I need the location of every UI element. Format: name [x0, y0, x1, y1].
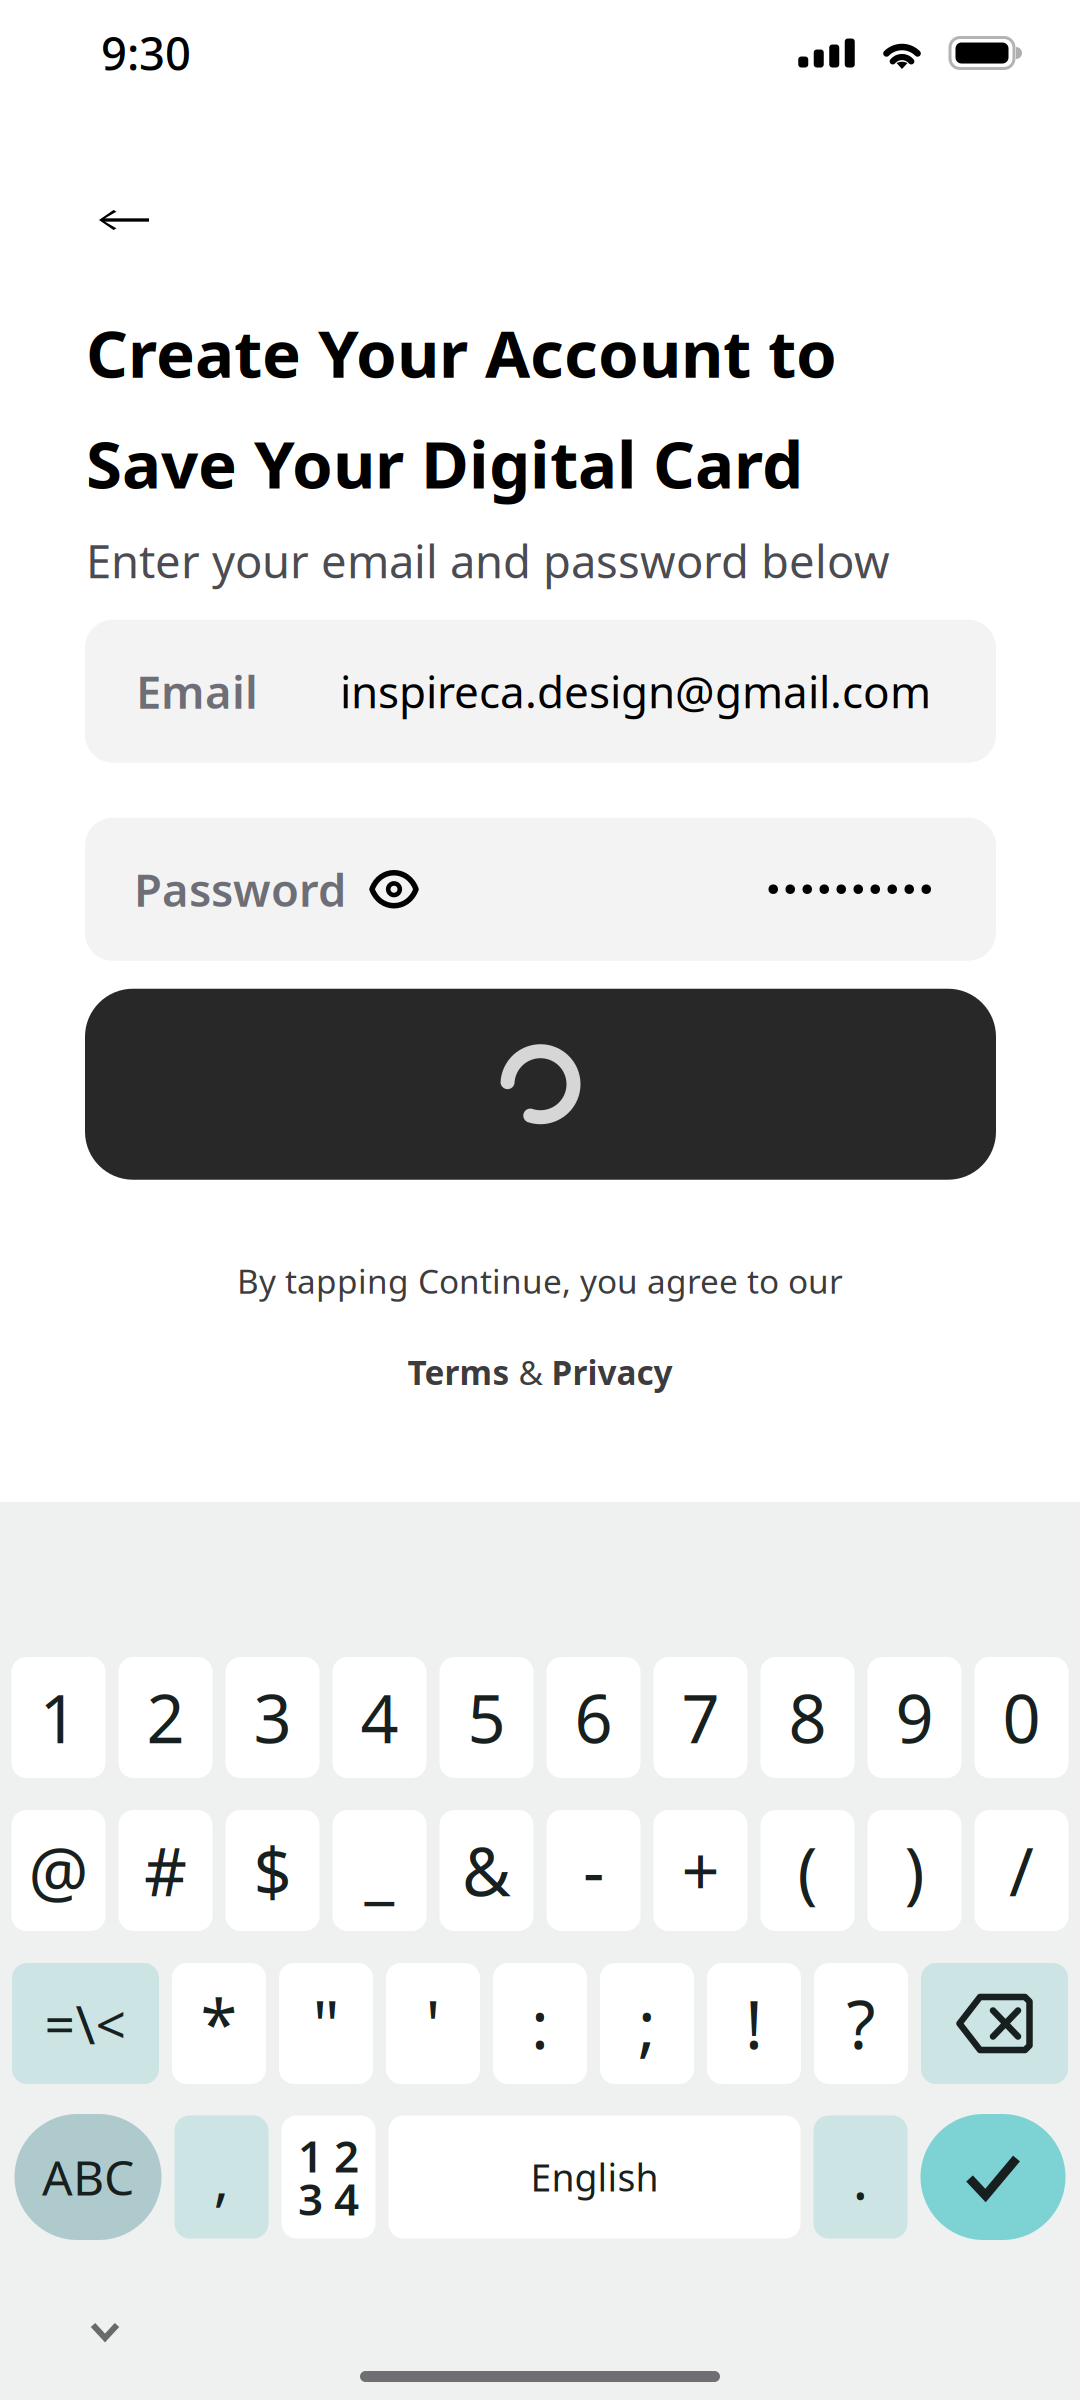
staticText: ABC [42, 2145, 134, 2209]
button[interactable]: English [388, 2115, 800, 2238]
button[interactable]: Terms [407, 1350, 509, 1394]
staticText: - [583, 1826, 604, 1915]
staticText: 0 [1002, 1673, 1040, 1762]
button[interactable]: ; [600, 1963, 694, 2084]
button[interactable]: " [279, 1963, 373, 2084]
button[interactable]: ! [707, 1963, 801, 2084]
staticText: : [531, 1979, 549, 2068]
button[interactable]: 2 [118, 1657, 212, 1778]
staticText: 8 [788, 1673, 826, 1762]
button[interactable]: + [653, 1810, 747, 1931]
button[interactable]: Privacy [551, 1350, 672, 1394]
button[interactable]: - [546, 1810, 640, 1931]
button[interactable]: 5 [439, 1657, 533, 1778]
button[interactable]: 0 [974, 1657, 1068, 1778]
staticText: 2 [146, 1673, 184, 1762]
button[interactable]: * [172, 1963, 266, 2084]
button[interactable]: =\< [12, 1963, 159, 2084]
button[interactable]: Show password [369, 870, 419, 908]
staticText: 6 [574, 1673, 612, 1762]
staticText: =\< [44, 1988, 126, 2059]
button[interactable]: # [118, 1810, 212, 1931]
button[interactable]: 1 [11, 1657, 105, 1778]
button[interactable]: 9 [867, 1657, 961, 1778]
button[interactable]: ABC [14, 2114, 161, 2240]
staticText: 1 [39, 1673, 77, 1762]
staticText: ) [904, 1826, 924, 1915]
staticText: ' [425, 1979, 440, 2068]
staticText: 4 [360, 1673, 398, 1762]
button[interactable]: & [439, 1810, 533, 1931]
button[interactable]: ? [814, 1963, 908, 2084]
staticText: Create Your Account to [86, 309, 837, 396]
button[interactable]: $ [225, 1810, 319, 1931]
button[interactable]: 4 [332, 1657, 426, 1778]
staticText: Enter your email and password below [86, 530, 890, 591]
staticText: _ [364, 1826, 394, 1915]
staticText: ( [797, 1826, 817, 1915]
button[interactable]: Numbers [281, 2115, 375, 2238]
staticText: Terms [407, 1350, 509, 1394]
staticText: Password [134, 859, 346, 919]
staticText: @ [28, 1826, 88, 1915]
button[interactable]: , [174, 2115, 268, 2238]
button[interactable]: ( [760, 1810, 854, 1931]
staticText: 9 [895, 1673, 933, 1762]
button[interactable]: Continue [85, 989, 996, 1180]
button[interactable]: . [813, 2115, 907, 2238]
staticText: * [200, 1979, 237, 2068]
staticText: ; [638, 1979, 656, 2068]
staticText: Email [136, 661, 258, 721]
button[interactable]: Back [99, 210, 149, 230]
staticText: ? [846, 1979, 875, 2068]
staticText: . [852, 2138, 868, 2216]
staticText: English [530, 2152, 658, 2202]
staticText: " [312, 1979, 339, 2068]
staticText: 3 [253, 1673, 291, 1762]
staticText: & [462, 1826, 511, 1915]
staticText: $ [253, 1826, 291, 1915]
staticText: / [1009, 1826, 1034, 1915]
staticText: Privacy [551, 1350, 672, 1394]
button[interactable]: Hide keyboard [74, 2306, 136, 2357]
button[interactable]: 8 [760, 1657, 854, 1778]
staticText: & [509, 1350, 551, 1394]
button[interactable]: : [493, 1963, 587, 2084]
staticText: inspireca.design@gmail.com [340, 662, 931, 720]
button[interactable]: 6 [546, 1657, 640, 1778]
button[interactable]: ' [386, 1963, 480, 2084]
button[interactable]: ) [867, 1810, 961, 1931]
staticText: 3 4 [298, 2169, 359, 2228]
staticText: By tapping Continue, you agree to our [237, 1259, 843, 1303]
button[interactable]: 3 [225, 1657, 319, 1778]
button[interactable]: _ [332, 1810, 426, 1931]
staticText: 7 [681, 1673, 719, 1762]
button[interactable]: Delete [921, 1963, 1068, 2084]
button[interactable]: 7 [653, 1657, 747, 1778]
staticText: # [144, 1826, 187, 1915]
button[interactable]: Go [920, 2114, 1065, 2240]
staticText: , [213, 2138, 229, 2216]
button[interactable]: @ [11, 1810, 105, 1931]
staticText: 9:30 [101, 23, 191, 83]
staticText: 5 [467, 1673, 505, 1762]
staticText: 1 2 [298, 2126, 359, 2185]
staticText: + [681, 1826, 719, 1915]
button[interactable]: / [974, 1810, 1068, 1931]
staticText: Save Your Digital Card [86, 420, 803, 507]
staticText: ! [745, 1979, 763, 2068]
